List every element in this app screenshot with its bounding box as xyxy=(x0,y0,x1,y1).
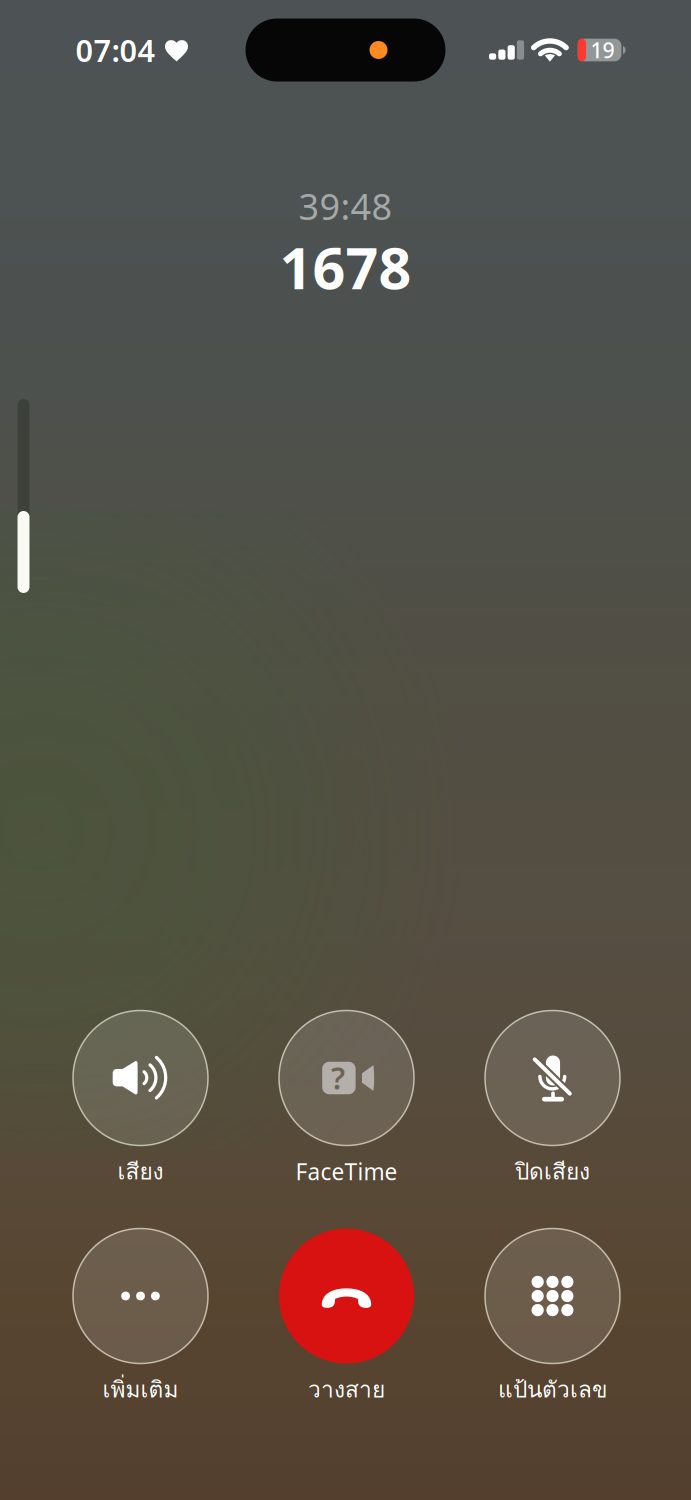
button[interactable]: เสียง xyxy=(40,1010,240,1189)
button[interactable]: เพิ่มเติม xyxy=(40,1228,240,1407)
staticText: 07:04 xyxy=(76,30,156,70)
button[interactable]: แป้นตัวเลข xyxy=(452,1228,652,1407)
staticText: เพิ่มเติม xyxy=(102,1372,178,1407)
staticText: 1678 xyxy=(279,229,411,305)
staticText: ? xyxy=(331,1057,345,1098)
staticText: วางสาย xyxy=(308,1372,385,1407)
staticText: 19 xyxy=(591,36,615,64)
staticText: แป้นตัวเลข xyxy=(498,1372,607,1407)
button[interactable]: ปิดเสียง xyxy=(452,1010,652,1189)
button[interactable]: ? xyxy=(246,1010,446,1189)
staticText: FaceTime xyxy=(295,1156,397,1186)
staticText: ปิดเสียง xyxy=(515,1154,590,1189)
staticText: 39:48 xyxy=(298,182,392,230)
button[interactable]: วางสาย xyxy=(246,1228,446,1407)
staticText: เสียง xyxy=(117,1154,163,1189)
